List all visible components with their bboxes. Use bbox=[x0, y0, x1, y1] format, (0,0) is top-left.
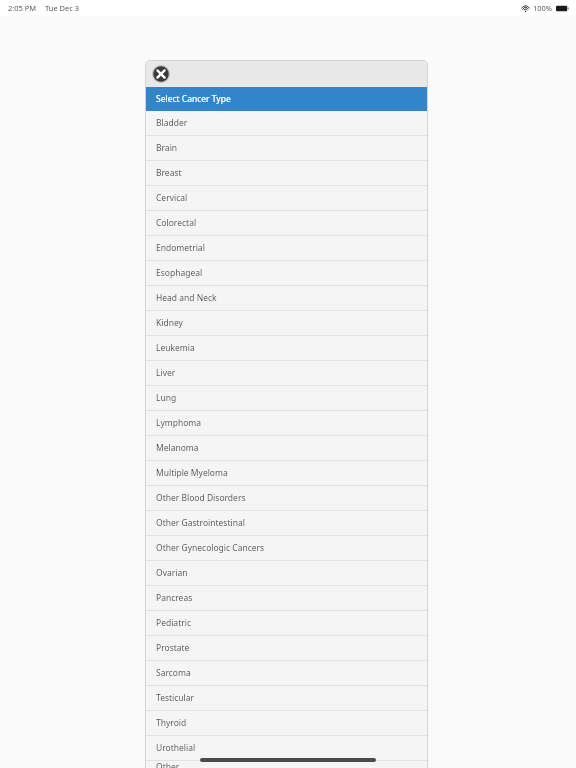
staticText: Tue Dec 3 bbox=[45, 3, 80, 13]
button[interactable]: Testicular bbox=[146, 686, 427, 710]
staticText: Pediatric bbox=[156, 617, 191, 629]
staticText: Thyroid bbox=[156, 717, 187, 729]
button[interactable]: Pancreas bbox=[146, 586, 427, 610]
button[interactable]: Other bbox=[146, 761, 427, 768]
staticText: Liver bbox=[156, 367, 176, 379]
staticText: Melanoma bbox=[156, 442, 199, 454]
button[interactable]: Multiple Myeloma bbox=[146, 461, 427, 485]
staticText: Other Gynecologic Cancers bbox=[156, 542, 265, 554]
button[interactable]: Urothelial bbox=[146, 736, 427, 760]
button[interactable]: Head and Neck bbox=[146, 286, 427, 310]
button[interactable]: Lymphoma bbox=[146, 411, 427, 435]
button[interactable]: Breast bbox=[146, 161, 427, 185]
button[interactable]: Sarcoma bbox=[146, 661, 427, 685]
button[interactable]: Lung bbox=[146, 386, 427, 410]
button[interactable]: Colorectal bbox=[146, 211, 427, 235]
staticText: Bladder bbox=[156, 117, 188, 129]
button[interactable]: Select Cancer Type bbox=[146, 87, 427, 111]
staticText: Kidney bbox=[156, 317, 183, 329]
button[interactable]: Brain bbox=[146, 136, 427, 160]
button[interactable]: Other Blood Disorders bbox=[146, 486, 427, 510]
staticText: 100% bbox=[533, 3, 553, 13]
staticText: Leukemia bbox=[156, 342, 195, 354]
staticText: Ovarian bbox=[156, 567, 188, 579]
staticText: Cervical bbox=[156, 192, 188, 204]
button[interactable]: Cervical bbox=[146, 186, 427, 210]
staticText: Colorectal bbox=[156, 217, 197, 229]
staticText: Esophageal bbox=[156, 267, 203, 279]
button[interactable]: Leukemia bbox=[146, 336, 427, 360]
button[interactable]: Esophageal bbox=[146, 261, 427, 285]
staticText: Breast bbox=[156, 167, 182, 179]
button[interactable]: Other Gynecologic Cancers bbox=[146, 536, 427, 560]
button[interactable]: Bladder bbox=[146, 111, 427, 135]
staticText: Lung bbox=[156, 392, 177, 404]
button[interactable]: Pediatric bbox=[146, 611, 427, 635]
staticText: 2:05 PM bbox=[8, 3, 37, 13]
staticText: Select Cancer Type bbox=[156, 93, 231, 105]
staticText: Endometrial bbox=[156, 242, 205, 254]
staticText: Urothelial bbox=[156, 742, 196, 754]
staticText: Multiple Myeloma bbox=[156, 467, 228, 479]
staticText: Prostate bbox=[156, 642, 190, 654]
button[interactable]: Melanoma bbox=[146, 436, 427, 460]
staticText: Other Blood Disorders bbox=[156, 492, 246, 504]
staticText: Lymphoma bbox=[156, 417, 202, 429]
staticText: Sarcoma bbox=[156, 667, 191, 679]
button[interactable]: Prostate bbox=[146, 636, 427, 660]
staticText: Testicular bbox=[156, 692, 195, 704]
button[interactable]: Kidney bbox=[146, 311, 427, 335]
staticText: Pancreas bbox=[156, 592, 193, 604]
button[interactable]: Close bbox=[152, 65, 170, 83]
button[interactable]: Thyroid bbox=[146, 711, 427, 735]
button[interactable]: Other Gastrointestinal bbox=[146, 511, 427, 535]
staticText: Brain bbox=[156, 142, 178, 154]
staticText: Other bbox=[156, 761, 180, 768]
staticText: Head and Neck bbox=[156, 292, 217, 304]
button[interactable]: Liver bbox=[146, 361, 427, 385]
button[interactable]: Endometrial bbox=[146, 236, 427, 260]
staticText: Other Gastrointestinal bbox=[156, 517, 245, 529]
button[interactable]: Ovarian bbox=[146, 561, 427, 585]
